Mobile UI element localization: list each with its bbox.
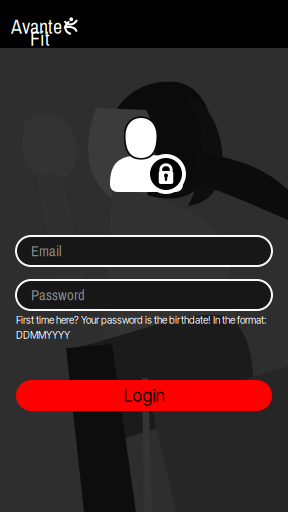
staticText: Avante xyxy=(11,13,62,40)
staticText: Email xyxy=(31,241,62,261)
button[interactable]: Password xyxy=(16,280,272,310)
staticText: Fit xyxy=(30,25,50,52)
staticText: Login xyxy=(123,385,164,406)
button[interactable]: Email xyxy=(16,236,272,266)
button[interactable]: Login xyxy=(16,380,272,411)
staticText: Password xyxy=(31,285,85,305)
staticText: DDMMYYYY xyxy=(16,329,70,341)
staticText: First time here? Your password is the bi… xyxy=(16,314,266,326)
